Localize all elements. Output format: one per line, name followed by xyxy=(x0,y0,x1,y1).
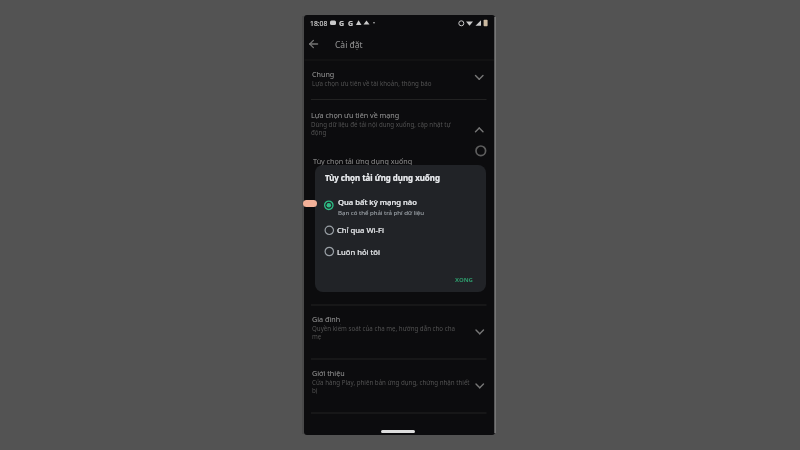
staticText: Chỉ qua Wi-Fi xyxy=(337,225,384,235)
staticText: Quyền kiểm soát của cha mẹ, hướng dẫn ch… xyxy=(312,324,455,332)
staticText: Lựa chọn ưu tiên về tài khoản, thông báo xyxy=(312,79,432,87)
button[interactable]: XONG xyxy=(449,273,479,287)
staticText: Tùy chọn tải ứng dụng xuống xyxy=(313,156,413,166)
staticText: Tùy chọn tải ứng dụng xuống xyxy=(325,173,440,184)
button[interactable]: Gia đình xyxy=(312,314,455,340)
staticText: Lựa chọn ưu tiên về mạng xyxy=(311,110,400,120)
staticText: Dùng dữ liệu để tải nội dung xuống, cập … xyxy=(311,120,451,128)
staticText: Chung xyxy=(312,69,335,79)
staticText: Qua bất kỳ mạng nào xyxy=(338,197,417,207)
staticText: Cửa hàng Play, phiên bản ứng dụng, chứng… xyxy=(312,378,470,386)
button[interactable]: Chung xyxy=(312,69,432,87)
staticText: động xyxy=(311,128,327,136)
staticText: bị xyxy=(312,386,318,394)
button[interactable] xyxy=(306,36,322,52)
staticText: G xyxy=(348,19,354,29)
button[interactable]: Giới thiệu xyxy=(312,368,470,394)
staticText: 18:08 xyxy=(310,19,328,28)
staticText: Cài đặt xyxy=(335,39,363,51)
staticText: G xyxy=(339,19,345,29)
staticText: Bạn có thể phải trả phí dữ liệu xyxy=(338,208,425,216)
staticText: Gia đình xyxy=(312,314,341,324)
button[interactable] xyxy=(322,243,480,260)
staticText: Giới thiệu xyxy=(312,368,345,378)
button[interactable]: Lựa chọn ưu tiên về mạng xyxy=(311,110,451,136)
staticText: Luôn hỏi tôi xyxy=(337,247,380,257)
staticText: XONG xyxy=(455,276,473,284)
button[interactable] xyxy=(322,222,480,239)
staticText: mẹ xyxy=(312,332,322,340)
button[interactable] xyxy=(322,196,480,216)
